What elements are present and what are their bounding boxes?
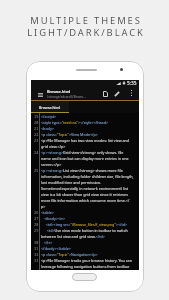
staticText: 31 xyxy=(34,246,39,251)
staticText: leverage following navigation buttons fr… xyxy=(41,264,130,269)
staticText: 22 xyxy=(34,132,39,137)
button[interactable]: Edit xyxy=(111,88,122,99)
staticText: <tbody><tr> xyxy=(41,216,66,221)
staticText: 29 xyxy=(34,228,39,233)
staticText: 25 xyxy=(34,168,39,173)
staticText: 21 xyxy=(34,126,39,131)
staticText: 26 xyxy=(34,210,39,215)
staticText: 5:35 xyxy=(127,80,137,86)
staticText: <p class="Topic">View Mode</p> xyxy=(41,132,98,137)
button[interactable]: Open navigation drawer xyxy=(34,89,46,101)
staticText: last modified time and permission. xyxy=(41,180,102,185)
staticText: <table> xyxy=(41,210,54,215)
staticText: 30 xyxy=(34,240,39,245)
button[interactable]: More options xyxy=(126,88,136,98)
staticText: 33 xyxy=(34,258,39,263)
staticText: </script> xyxy=(41,114,57,119)
staticText: 32 xyxy=(34,252,39,257)
staticText: MULTIPLE THEMES LIGHT/DARK/BLACK xyxy=(27,14,145,39)
staticText: p> xyxy=(41,204,46,209)
button[interactable]: Browse.html xyxy=(31,101,69,113)
staticText: <td>Use view mode button in toolbar to s… xyxy=(41,228,128,233)
staticText: </tbody></table> xyxy=(41,246,71,251)
staticText: <p><strong>List view</strong> shows more… xyxy=(41,168,123,173)
staticText: 19 xyxy=(34,114,39,119)
staticText: view is a bit slower than grid view sinc… xyxy=(41,192,128,197)
staticText: <p><strong>Grid view</strong> only shows… xyxy=(41,150,124,155)
staticText: /storage/sdcard3/Brows... xyxy=(47,95,86,99)
staticText: <td><img src="/Browse_files/f_view.png">… xyxy=(41,222,128,227)
staticText: 28 xyxy=(34,222,39,227)
staticText: between list view and grid view.</td> xyxy=(41,234,105,239)
staticText: <body> xyxy=(41,126,54,131)
staticText: 24 xyxy=(34,150,39,155)
staticText: name and icon but can display more entri… xyxy=(41,156,129,161)
staticText: <p class="Topic">Navigation</p> xyxy=(41,252,98,257)
staticText: screen.</p> xyxy=(41,162,62,167)
staticText: </tr> xyxy=(41,240,53,245)
staticText: more file information which consume more… xyxy=(41,198,130,203)
staticText: Browse.html xyxy=(39,105,61,110)
staticText: information, including folder children s… xyxy=(41,174,134,179)
button[interactable]: File xyxy=(100,88,111,99)
staticText: grid view.</p> xyxy=(41,144,66,149)
staticText: 27 xyxy=(34,216,39,221)
staticText: <p>File Manager has two view modes: list… xyxy=(41,138,130,143)
staticText: Sometimes(especially in network environm… xyxy=(41,186,128,191)
staticText: 23 xyxy=(34,138,39,143)
staticText: <style type="text/css"></style></head> xyxy=(41,120,109,125)
staticText: <p>File Manager tracks your browse histo… xyxy=(41,258,132,263)
staticText: Browse.html xyxy=(47,89,71,94)
staticText: 20 xyxy=(34,120,39,125)
